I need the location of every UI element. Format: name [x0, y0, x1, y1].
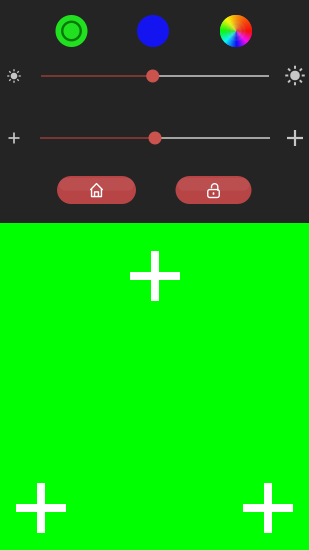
- button[interactable]: Home: [57, 176, 136, 204]
- button[interactable]: Custom colour: [214, 9, 258, 53]
- button[interactable]: Blue light: [131, 9, 175, 53]
- button[interactable]: Unlock: [175, 176, 251, 204]
- button[interactable]: Green light: [49, 9, 93, 53]
